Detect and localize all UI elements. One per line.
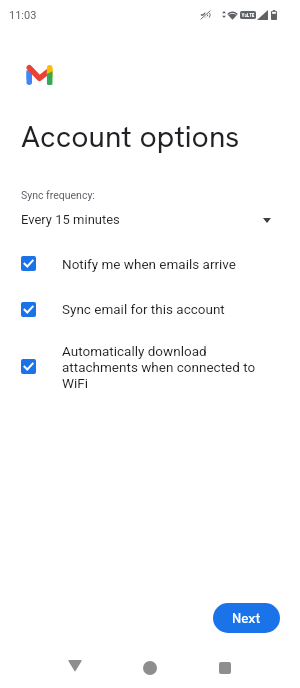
staticText: Sync email for this account (62, 301, 225, 317)
staticText: Notify me when emails arrive (62, 256, 236, 272)
staticText: Every 15 minutes (21, 212, 120, 227)
other: Wi-Fi (227, 10, 238, 20)
button[interactable]: Recent apps (200, 648, 250, 688)
staticText: Account options (21, 117, 240, 156)
button[interactable]: Every 15 minutes (0, 208, 300, 232)
other: Expand sync frequency (263, 218, 271, 223)
button[interactable] (0, 292, 300, 327)
button[interactable]: Next (213, 603, 280, 633)
staticText: Next (232, 609, 261, 627)
button[interactable] (0, 246, 300, 281)
other: Mobile signal (257, 10, 268, 20)
staticText: Sync frequency: (21, 189, 95, 201)
button[interactable]: Back (50, 648, 100, 688)
other: Battery (271, 10, 277, 20)
staticText: Automatically download attachments when … (62, 343, 268, 391)
other: VoLTE (240, 11, 256, 19)
button[interactable]: Home (125, 648, 175, 688)
other: Silent mode (200, 10, 211, 20)
button[interactable] (0, 349, 300, 384)
staticText: 11:03 (9, 9, 37, 22)
